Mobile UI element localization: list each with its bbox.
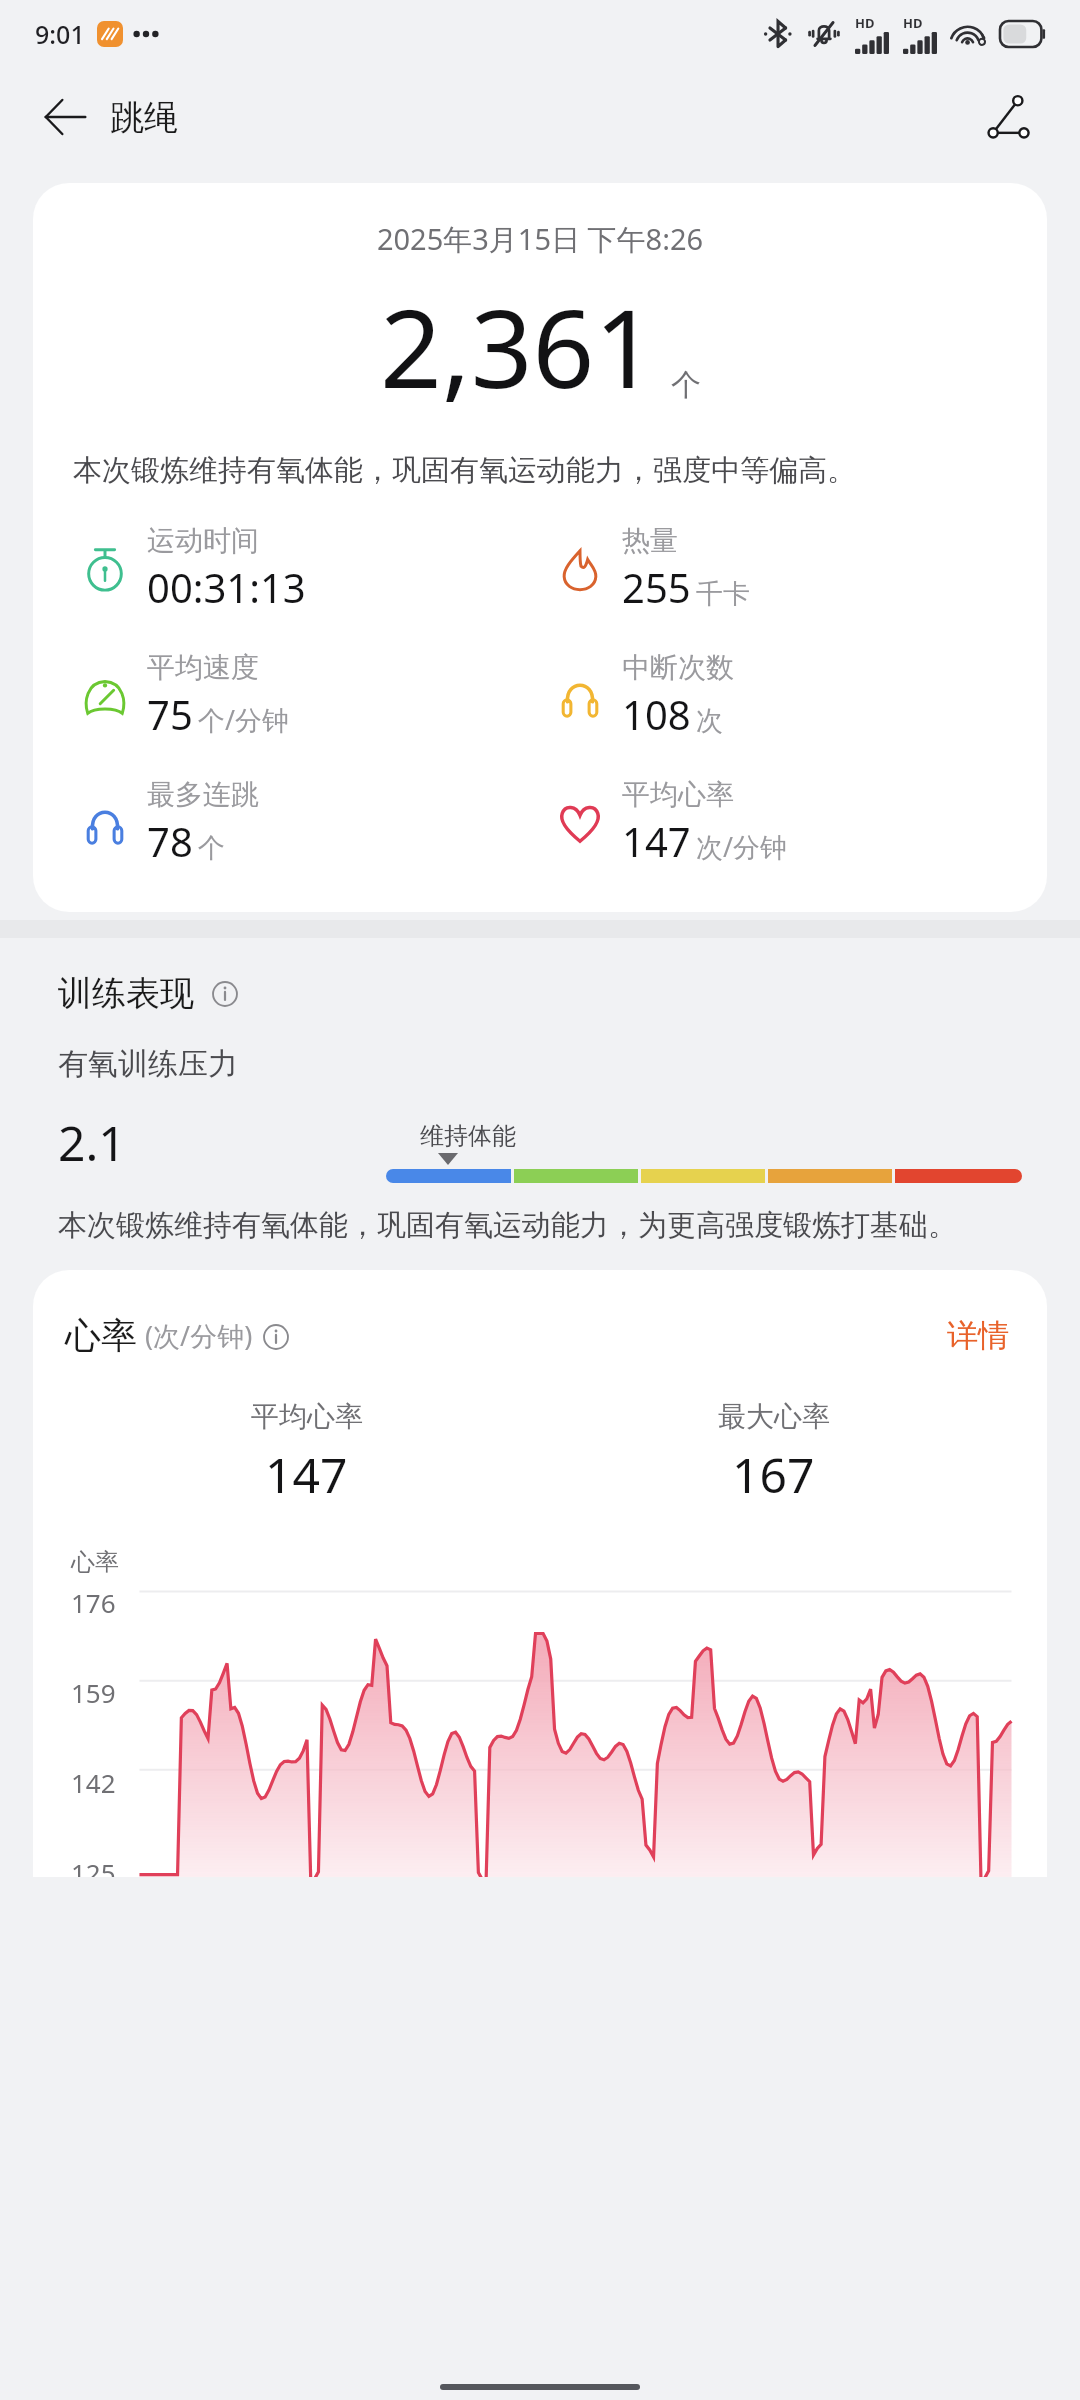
button[interactable]: Share xyxy=(978,86,1040,148)
staticText: 中断次数 xyxy=(622,650,734,685)
staticText: 00:31:13 xyxy=(147,560,306,614)
staticText: 9:01 xyxy=(35,17,85,51)
staticText: 147 xyxy=(622,814,691,868)
staticText: 平均心率 xyxy=(251,1399,363,1434)
staticText: 运动时间 xyxy=(147,523,259,558)
staticText: 次/分钟 xyxy=(696,828,788,865)
staticText: 次 xyxy=(696,704,723,738)
staticText: 个 xyxy=(198,831,225,865)
staticText: (次/分钟) xyxy=(145,1317,253,1354)
button[interactable]: 热量 xyxy=(552,523,1027,614)
staticText: 维持体能 xyxy=(420,1121,516,1151)
staticText: 75 xyxy=(147,687,193,741)
staticText: 平均速度 xyxy=(147,650,259,685)
button[interactable]: 平均心率 xyxy=(552,777,1027,868)
staticText: 有氧训练压力 xyxy=(58,1045,238,1083)
button[interactable]: 最多连跳 xyxy=(77,777,552,868)
staticText: HD xyxy=(855,14,875,32)
staticText: 176 xyxy=(71,1585,116,1620)
staticText: 跳绳 xyxy=(110,96,178,139)
staticText: 2.1 xyxy=(58,1110,126,1175)
staticText: 最大心率 xyxy=(718,1399,830,1434)
staticText: 167 xyxy=(732,1442,815,1507)
staticText: 78 xyxy=(147,814,193,868)
staticText: 147 xyxy=(265,1442,348,1507)
staticText: 2025年3月15日 下午8:26 xyxy=(33,219,1047,259)
button[interactable]: 运动时间 xyxy=(77,523,552,614)
staticText: 个/分钟 xyxy=(198,701,290,738)
staticText: 心率 xyxy=(71,1547,119,1577)
staticText: 心率 xyxy=(65,1313,137,1358)
staticText: 详情 xyxy=(947,1316,1009,1355)
staticText: 最多连跳 xyxy=(147,777,259,812)
staticText: 本次锻炼维持有氧体能，巩固有氧运动能力，为更高强度锻炼打基础。 xyxy=(58,1207,957,1244)
staticText: HD xyxy=(903,14,923,32)
staticText: 千卡 xyxy=(696,577,750,611)
staticText: 热量 xyxy=(622,523,678,558)
button[interactable]: Info xyxy=(208,977,242,1011)
button[interactable]: Info xyxy=(261,1322,291,1352)
staticText: 159 xyxy=(71,1675,116,1710)
button[interactable]: 中断次数 xyxy=(552,650,1027,741)
staticText: 142 xyxy=(71,1765,116,1800)
staticText: 125 xyxy=(71,1855,116,1877)
staticText: 2,361 xyxy=(380,273,657,420)
button[interactable]: Back xyxy=(38,89,94,145)
staticText: 255 xyxy=(622,560,691,614)
staticText: 个 xyxy=(671,366,701,404)
button[interactable]: 详情 xyxy=(941,1310,1015,1361)
button[interactable]: 平均速度 xyxy=(77,650,552,741)
staticText: 平均心率 xyxy=(622,777,734,812)
staticText: 训练表现 xyxy=(58,972,194,1015)
staticText: 本次锻炼维持有氧体能，巩固有氧运动能力，强度中等偏高。 xyxy=(73,452,856,489)
staticText: 108 xyxy=(622,687,691,741)
